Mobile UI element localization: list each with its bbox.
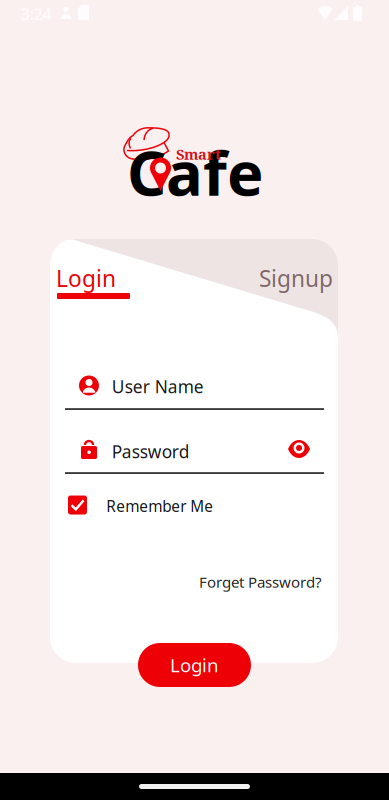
button[interactable]: Signup <box>259 263 333 303</box>
staticText: 3:24 <box>20 3 51 25</box>
button[interactable]: Login <box>56 263 146 329</box>
staticText: Login <box>56 263 116 294</box>
staticText: User Name <box>112 375 204 398</box>
staticText: Smart <box>176 144 221 164</box>
staticText: Forget Password? <box>199 572 322 592</box>
button[interactable]: Remember Me <box>68 494 220 516</box>
staticText: Signup <box>259 263 333 294</box>
button[interactable]: Forget Password? <box>199 571 322 593</box>
staticText: Login <box>170 653 219 677</box>
staticText: Cafe <box>127 130 264 214</box>
staticText: Remember Me <box>106 496 213 516</box>
button[interactable]: Login <box>138 643 251 687</box>
button[interactable]: Show password <box>284 436 314 462</box>
staticText: Password <box>112 440 190 463</box>
